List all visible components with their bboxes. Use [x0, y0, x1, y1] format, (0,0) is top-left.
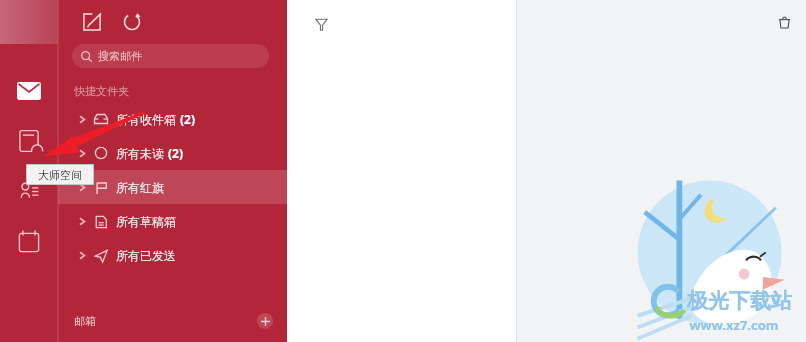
staticText: 邮箱: [74, 314, 96, 328]
staticText: 所有已发送: [116, 248, 176, 263]
button[interactable]: 所有草稿箱: [58, 204, 287, 238]
button[interactable]: Master space: [0, 126, 58, 156]
button[interactable]: 所有红旗: [58, 170, 287, 204]
button[interactable]: 所有未读: [58, 136, 287, 170]
staticText: 所有未读: [116, 146, 164, 161]
button[interactable]: Filter: [309, 12, 333, 36]
staticText: (2): [168, 145, 184, 161]
button[interactable]: Calendar: [0, 226, 58, 256]
button[interactable]: Contacts: [0, 176, 58, 206]
staticText: 搜索邮件: [98, 49, 142, 63]
button[interactable]: Delete: [772, 10, 796, 34]
button[interactable]: Add mailbox: [257, 313, 273, 329]
staticText: 快捷文件夹: [74, 84, 129, 98]
staticText: 极光下载站: [687, 288, 792, 314]
button[interactable]: 所有收件箱: [58, 102, 287, 136]
staticText: 大师空间: [38, 168, 82, 182]
button[interactable]: Compose: [76, 6, 108, 38]
staticText: www.xz7.com: [689, 316, 779, 334]
staticText: 所有收件箱: [116, 112, 176, 127]
button[interactable]: Mail: [0, 76, 58, 106]
button[interactable]: Refresh: [116, 6, 148, 38]
staticText: 所有红旗: [116, 180, 164, 195]
staticText: (2): [180, 111, 196, 127]
staticText: 所有草稿箱: [116, 214, 176, 229]
button[interactable]: 搜索邮件: [72, 44, 269, 68]
button[interactable]: 所有已发送: [58, 238, 287, 272]
